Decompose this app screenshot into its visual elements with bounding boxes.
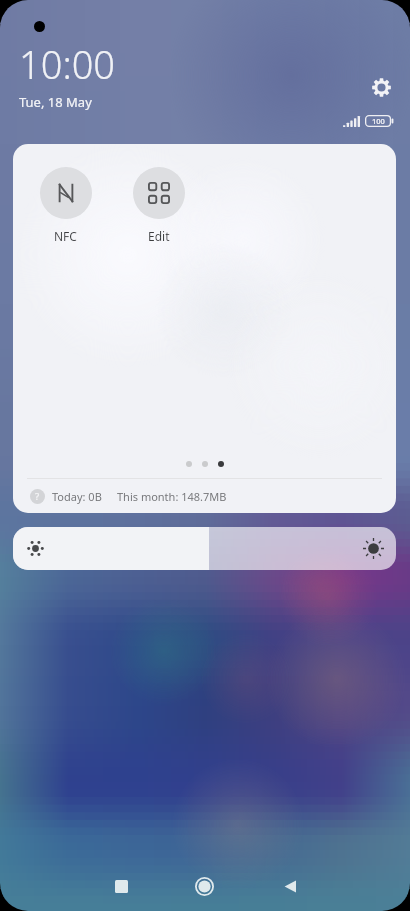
staticText: 100 bbox=[372, 116, 385, 126]
button[interactable]: Brightness bbox=[13, 527, 396, 570]
staticText: NFC bbox=[54, 228, 77, 244]
staticText: Edit bbox=[148, 228, 170, 244]
button[interactable]: Recent apps bbox=[95, 860, 147, 911]
staticText: ? bbox=[35, 490, 40, 503]
button[interactable]: Edit bbox=[112, 167, 205, 244]
staticText: Today: 0B bbox=[52, 489, 102, 504]
staticText: This month: 148.7MB bbox=[117, 489, 227, 504]
button[interactable]: Back bbox=[264, 860, 316, 911]
button[interactable]: NFC bbox=[19, 167, 112, 244]
button[interactable]: Settings bbox=[364, 70, 398, 104]
staticText: Tue, 18 May bbox=[19, 93, 92, 111]
button[interactable]: Home bbox=[178, 860, 230, 911]
staticText: 10:00 bbox=[19, 38, 116, 90]
